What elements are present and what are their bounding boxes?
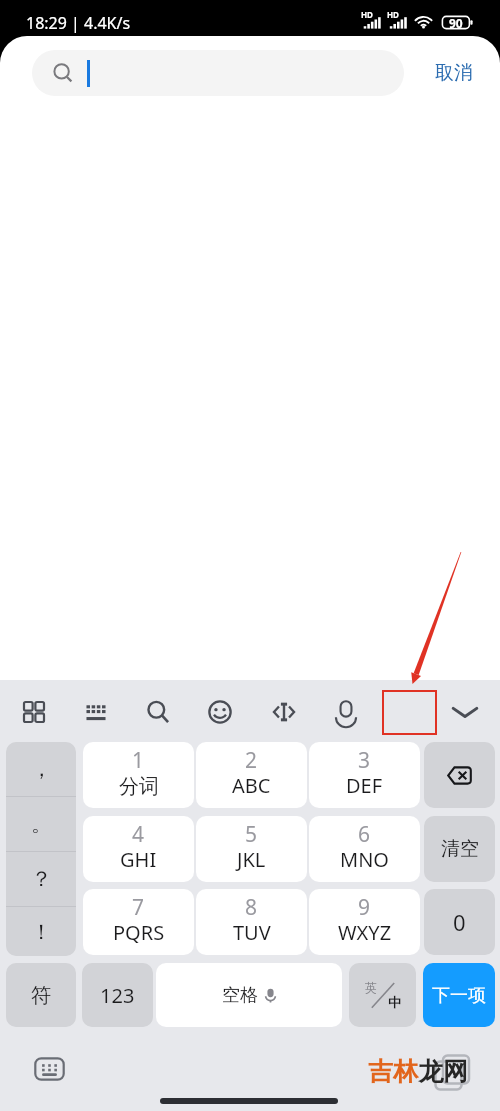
- staticText: ，: [31, 756, 52, 782]
- button[interactable]: 0: [424, 889, 495, 955]
- staticText: 下一项: [432, 984, 486, 1007]
- staticText: 18:29 | 4.4K/s: [26, 12, 131, 34]
- staticText: 4: [132, 820, 145, 849]
- button[interactable]: Hide keyboard: [451, 698, 479, 726]
- staticText: ！: [31, 919, 52, 945]
- button[interactable]: 英: [349, 963, 416, 1027]
- staticText: 0: [453, 907, 466, 937]
- staticText: 1: [132, 746, 145, 775]
- staticText: 分词: [119, 774, 159, 799]
- staticText: HD: [361, 9, 373, 20]
- staticText: WXYZ: [338, 919, 392, 946]
- staticText: 9: [358, 893, 371, 922]
- staticText: 英: [365, 980, 377, 995]
- staticText: 取消: [435, 61, 473, 85]
- staticText: ABC: [232, 772, 271, 799]
- staticText: 8: [245, 893, 258, 922]
- button[interactable]: 空格: [156, 963, 342, 1027]
- button[interactable]: Settings: [382, 690, 437, 735]
- button[interactable]: 取消: [428, 50, 480, 96]
- button[interactable]: Keyboard: [82, 698, 110, 726]
- staticText: 90: [449, 15, 463, 31]
- button[interactable]: Keyboard layouts: [20, 698, 48, 726]
- staticText: 空格: [222, 984, 258, 1007]
- button[interactable]: 。: [6, 797, 76, 851]
- button[interactable]: Move cursor: [270, 698, 298, 726]
- staticText: 吉林: [368, 1056, 418, 1087]
- button[interactable]: [32, 50, 404, 96]
- staticText: 清空: [441, 837, 479, 861]
- staticText: MNO: [340, 846, 389, 873]
- other: Backspace: [447, 766, 472, 785]
- button[interactable]: Backspace: [424, 742, 495, 808]
- button[interactable]: 123: [82, 963, 153, 1027]
- button[interactable]: 8: [196, 889, 307, 955]
- staticText: DEF: [346, 772, 383, 799]
- staticText: 。: [31, 811, 52, 837]
- button[interactable]: Voice input: [332, 698, 360, 726]
- button[interactable]: 2: [196, 742, 307, 808]
- button[interactable]: 5: [196, 816, 307, 882]
- staticText: 3: [358, 746, 371, 775]
- staticText: PQRS: [113, 919, 165, 946]
- staticText: HD: [387, 9, 399, 20]
- staticText: 123: [100, 982, 135, 1009]
- button[interactable]: ！: [6, 907, 76, 956]
- button[interactable]: 1: [83, 742, 194, 808]
- button[interactable]: 9: [309, 889, 420, 955]
- button[interactable]: ？: [6, 852, 76, 906]
- staticText: 7: [132, 893, 145, 922]
- staticText: 6: [358, 820, 371, 849]
- button[interactable]: 3: [309, 742, 420, 808]
- staticText: 符: [31, 983, 51, 1008]
- staticText: 5: [245, 820, 258, 849]
- button[interactable]: 符: [6, 963, 76, 1027]
- button[interactable]: ，: [6, 742, 76, 796]
- button[interactable]: Switch keyboard: [34, 1057, 65, 1081]
- button[interactable]: Search: [144, 698, 172, 726]
- staticText: 龙网: [418, 1056, 468, 1087]
- staticText: ？: [31, 866, 52, 892]
- button[interactable]: 4: [83, 816, 194, 882]
- staticText: GHI: [120, 846, 157, 873]
- button[interactable]: 清空: [424, 816, 495, 882]
- button[interactable]: 7: [83, 889, 194, 955]
- button[interactable]: 6: [309, 816, 420, 882]
- staticText: JKL: [237, 846, 266, 873]
- staticText: TUV: [233, 919, 271, 946]
- staticText: 中: [388, 994, 401, 1010]
- staticText: 2: [245, 746, 258, 775]
- button[interactable]: 下一项: [423, 963, 495, 1027]
- button[interactable]: Emoji: [206, 698, 234, 726]
